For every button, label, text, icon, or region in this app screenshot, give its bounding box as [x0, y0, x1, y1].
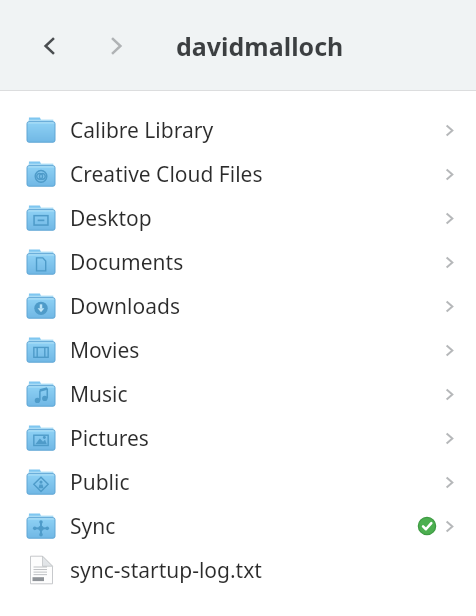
- staticText: Movies: [70, 336, 140, 365]
- staticText: Documents: [70, 248, 184, 277]
- staticText: Calibre Library: [70, 116, 214, 145]
- button[interactable]: Forward: [96, 26, 136, 66]
- staticText: Music: [70, 380, 128, 409]
- staticText: Desktop: [70, 204, 152, 233]
- button[interactable]: Documents: [0, 240, 476, 284]
- button[interactable]: Desktop: [0, 196, 476, 240]
- button[interactable]: Sync: [0, 504, 476, 548]
- staticText: Public: [70, 468, 130, 497]
- button[interactable]: Music: [0, 372, 476, 416]
- button[interactable]: sync-startup-log.txt: [0, 548, 476, 592]
- staticText: Sync: [70, 512, 116, 541]
- button[interactable]: Public: [0, 460, 476, 504]
- button[interactable]: Downloads: [0, 284, 476, 328]
- staticText: Creative Cloud Files: [70, 160, 263, 189]
- staticText: davidmalloch: [176, 29, 344, 63]
- button[interactable]: Back: [30, 26, 70, 66]
- staticText: Pictures: [70, 424, 149, 453]
- button[interactable]: Pictures: [0, 416, 476, 460]
- staticText: sync-startup-log.txt: [70, 556, 262, 585]
- button[interactable]: Calibre Library: [0, 108, 476, 152]
- button[interactable]: Creative Cloud Files: [0, 152, 476, 196]
- staticText: Downloads: [70, 292, 180, 321]
- button[interactable]: Movies: [0, 328, 476, 372]
